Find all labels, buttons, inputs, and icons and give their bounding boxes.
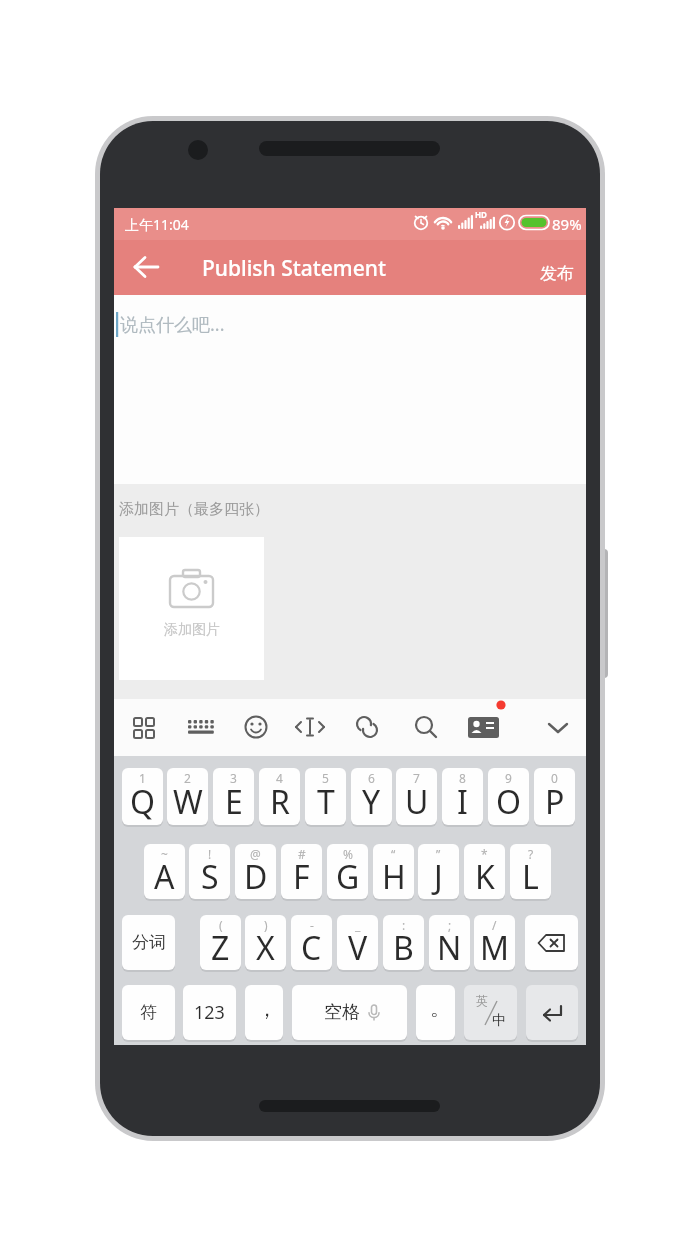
- staticText: 空格: [324, 1001, 360, 1024]
- staticText: ，: [257, 997, 277, 1022]
- staticText: 3: [230, 770, 237, 786]
- staticText: N: [437, 926, 462, 970]
- staticText: H: [382, 855, 406, 899]
- staticText: F: [293, 855, 310, 899]
- button[interactable]: *: [464, 844, 505, 899]
- button[interactable]: (: [200, 915, 241, 970]
- staticText: G: [336, 855, 360, 899]
- button[interactable]: @: [235, 844, 276, 899]
- staticText: A: [154, 855, 175, 899]
- button[interactable]: -: [291, 915, 332, 970]
- button[interactable]: 7: [396, 768, 437, 825]
- staticText: U: [405, 780, 429, 824]
- staticText: 说点什么吧...: [120, 312, 225, 337]
- staticText: Publish Statement: [202, 254, 387, 283]
- staticText: T: [317, 780, 335, 824]
- staticText: 4: [276, 770, 283, 786]
- button[interactable]: [525, 915, 578, 970]
- button[interactable]: 英: [464, 985, 517, 1040]
- staticText: S: [201, 855, 219, 899]
- staticText: !: [208, 846, 212, 862]
- button[interactable]: 发布: [535, 258, 579, 288]
- button[interactable]: 8: [442, 768, 483, 825]
- button[interactable]: [345, 699, 389, 756]
- staticText: 上午11:04: [125, 215, 189, 234]
- staticText: -: [310, 917, 314, 933]
- staticText: Q: [130, 780, 155, 824]
- staticText: I: [457, 780, 468, 824]
- button[interactable]: [234, 699, 278, 756]
- staticText: 添加图片: [164, 621, 220, 639]
- button[interactable]: :: [383, 915, 424, 970]
- staticText: Y: [362, 780, 381, 824]
- staticText: 123: [194, 1000, 225, 1025]
- button[interactable]: [122, 699, 166, 756]
- button[interactable]: [179, 699, 223, 756]
- button[interactable]: /: [474, 915, 515, 970]
- button[interactable]: “: [373, 844, 414, 899]
- staticText: 分词: [132, 932, 166, 953]
- staticText: %: [343, 846, 353, 862]
- button[interactable]: ”: [418, 844, 459, 899]
- button[interactable]: 添加图片: [119, 537, 264, 680]
- staticText: ): [264, 917, 268, 933]
- staticText: M: [480, 926, 510, 970]
- button[interactable]: 2: [167, 768, 208, 825]
- staticText: “: [391, 846, 396, 862]
- staticText: /: [492, 917, 497, 933]
- button[interactable]: [126, 247, 166, 287]
- staticText: 1: [139, 770, 146, 786]
- staticText: D: [244, 855, 268, 899]
- button[interactable]: ~: [144, 844, 185, 899]
- button[interactable]: ): [245, 915, 286, 970]
- button[interactable]: 1: [122, 768, 163, 825]
- staticText: J: [434, 855, 443, 899]
- staticText: 。: [430, 996, 450, 1021]
- button[interactable]: ;: [429, 915, 470, 970]
- button[interactable]: 3: [213, 768, 254, 825]
- button[interactable]: [461, 699, 505, 756]
- button[interactable]: 9: [488, 768, 529, 825]
- button[interactable]: 空格: [292, 985, 407, 1040]
- staticText: ?: [528, 846, 534, 862]
- staticText: L: [522, 855, 539, 899]
- staticText: :: [402, 917, 406, 933]
- button[interactable]: %: [327, 844, 368, 899]
- button[interactable]: ?: [510, 844, 551, 899]
- staticText: 9: [505, 770, 512, 786]
- staticText: 6: [368, 770, 375, 786]
- staticText: C: [301, 926, 322, 970]
- staticText: B: [393, 926, 414, 970]
- button[interactable]: 。: [416, 985, 455, 1040]
- button[interactable]: 分词: [122, 915, 175, 970]
- button[interactable]: 6: [351, 768, 392, 825]
- button[interactable]: 说点什么吧...: [114, 295, 586, 484]
- staticText: ~: [161, 846, 168, 862]
- button[interactable]: [288, 699, 332, 756]
- button[interactable]: 4: [259, 768, 300, 825]
- staticText: O: [496, 780, 521, 824]
- button[interactable]: ，: [245, 985, 283, 1040]
- button[interactable]: 123: [183, 985, 236, 1040]
- staticText: 89%: [552, 214, 582, 234]
- button[interactable]: 0: [534, 768, 575, 825]
- button[interactable]: [536, 699, 580, 756]
- staticText: *: [481, 846, 488, 862]
- button[interactable]: !: [189, 844, 230, 899]
- staticText: R: [270, 780, 290, 824]
- staticText: 发布: [540, 263, 574, 284]
- staticText: 添加图片（最多四张）: [119, 500, 269, 519]
- staticText: 7: [413, 770, 420, 786]
- button[interactable]: 符: [122, 985, 175, 1040]
- button[interactable]: [526, 985, 578, 1040]
- button[interactable]: [404, 699, 448, 756]
- staticText: @: [250, 846, 261, 862]
- staticText: (: [219, 917, 223, 933]
- staticText: E: [225, 780, 243, 824]
- button[interactable]: #: [281, 844, 322, 899]
- button[interactable]: _: [337, 915, 378, 970]
- staticText: Z: [211, 926, 230, 970]
- staticText: _: [355, 917, 361, 933]
- button[interactable]: 5: [305, 768, 346, 825]
- staticText: #: [298, 846, 306, 862]
